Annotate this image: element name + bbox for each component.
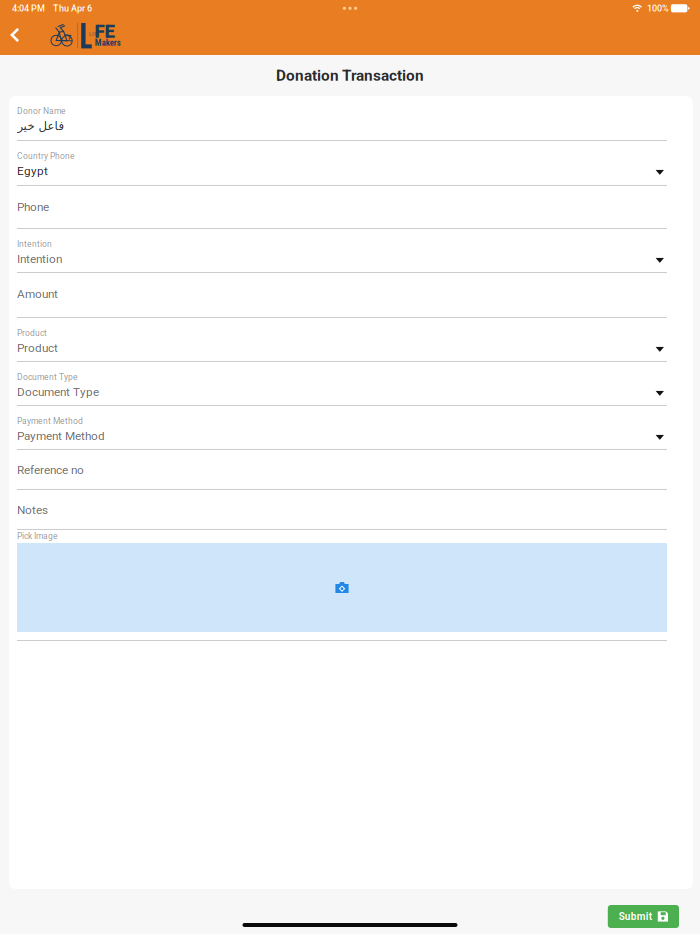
- staticText: Payment Method: [17, 429, 105, 443]
- staticText: 4:04 PM: [12, 3, 45, 14]
- staticText: Pick Image: [17, 531, 58, 541]
- staticText: Donation Transaction: [276, 66, 424, 84]
- staticText: Donor Name: [17, 106, 66, 116]
- button[interactable]: Pick Image: [17, 543, 667, 632]
- staticText: Amount: [17, 287, 58, 301]
- button[interactable]: Product: [17, 318, 667, 362]
- button[interactable]: Phone: [17, 186, 667, 229]
- button[interactable]: Notes: [17, 490, 667, 530]
- staticText: Country Phone: [17, 151, 75, 161]
- staticText: Product: [17, 341, 58, 355]
- staticText: Egypt: [17, 164, 48, 178]
- button[interactable]: Reference no: [17, 450, 667, 490]
- staticText: Phone: [17, 200, 49, 214]
- button[interactable]: Donor Name: [17, 96, 667, 141]
- staticText: LIFE: [89, 31, 100, 37]
- staticText: Reference no: [17, 463, 84, 477]
- button[interactable]: Back: [0, 15, 30, 55]
- staticText: FE: [95, 20, 115, 42]
- staticText: 100%: [647, 3, 669, 14]
- staticText: فاعل خير: [17, 119, 64, 133]
- staticText: Document Type: [17, 372, 78, 382]
- staticText: Document Type: [17, 385, 99, 399]
- staticText: Payment Method: [17, 416, 83, 426]
- button[interactable]: Submit: [608, 905, 679, 928]
- staticText: Makers: [95, 37, 121, 48]
- staticText: Thu Apr 6: [53, 3, 92, 14]
- button[interactable]: Amount: [17, 273, 667, 318]
- button[interactable]: Document Type: [17, 362, 667, 406]
- button[interactable]: Payment Method: [17, 406, 667, 450]
- staticText: Intention: [17, 252, 62, 266]
- staticText: Product: [17, 328, 47, 338]
- staticText: Intention: [17, 239, 52, 249]
- button[interactable]: Intention: [17, 229, 667, 273]
- staticText: Notes: [17, 503, 48, 517]
- button[interactable]: Country Phone: [17, 141, 667, 186]
- staticText: Submit: [619, 911, 652, 922]
